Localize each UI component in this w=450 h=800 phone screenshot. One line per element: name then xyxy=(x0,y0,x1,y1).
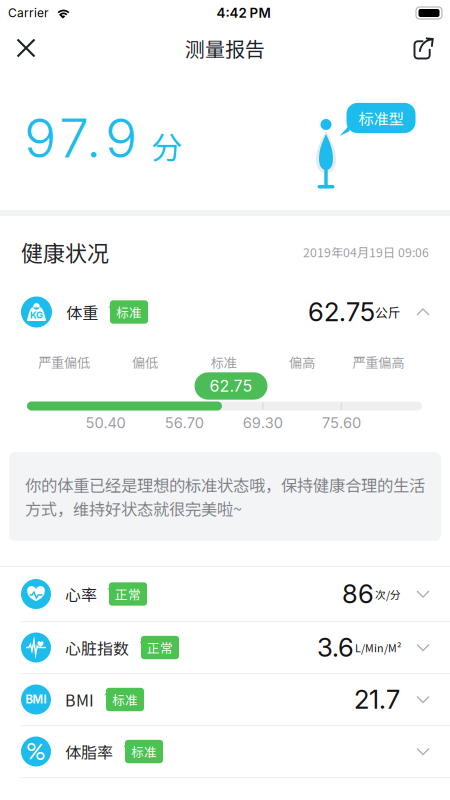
staticText: 体重 xyxy=(66,300,98,324)
staticText: 偏高 xyxy=(289,352,315,372)
staticText: BMI xyxy=(25,693,46,706)
staticText: 测量报告 xyxy=(185,33,265,62)
staticText: 严重偏高 xyxy=(352,352,404,372)
staticText: 62.75 xyxy=(308,296,375,327)
staticText: 62.75 xyxy=(209,376,252,396)
staticText: 心率 xyxy=(65,582,97,606)
staticText: 69.30 xyxy=(243,414,283,432)
staticText: 正常 xyxy=(115,585,141,603)
staticText: 4:42 PM xyxy=(216,5,270,21)
staticText: 次/分 xyxy=(375,586,401,602)
staticText: 标准 xyxy=(210,352,236,372)
staticText: L/Min/M² xyxy=(355,640,401,655)
button[interactable]: Share xyxy=(398,26,450,70)
staticText: 偏低 xyxy=(132,352,158,372)
staticText: 标准 xyxy=(116,303,142,321)
staticText: BMI xyxy=(65,688,94,711)
staticText: 86 xyxy=(342,578,374,609)
staticText: 97.9 xyxy=(24,106,137,170)
staticText: 正常 xyxy=(147,638,173,657)
staticText: 分 xyxy=(151,123,182,168)
staticText: 2019年04月19日 09:06 xyxy=(303,243,429,261)
staticText: 你的体重已经是理想的标准状态哦，保持健康合理的生活方式，维持好状态就很完美啦~ xyxy=(25,473,425,520)
button[interactable]: 心率 xyxy=(0,567,450,621)
staticText: 50.40 xyxy=(86,414,126,432)
staticText: 体脂率 xyxy=(65,740,113,763)
staticText: 严重偏低 xyxy=(38,352,90,372)
staticText: 心脏指数 xyxy=(65,636,129,659)
staticText: 标准 xyxy=(112,690,138,709)
button[interactable]: 心脏指数 xyxy=(0,622,450,673)
button[interactable]: Close xyxy=(0,26,52,70)
staticText: 56.70 xyxy=(165,414,204,432)
staticText: 75.60 xyxy=(322,414,361,432)
button[interactable]: BMI xyxy=(0,674,450,725)
staticText: 21.7 xyxy=(354,684,400,715)
button[interactable]: KG xyxy=(0,288,450,336)
staticText: Carrier xyxy=(8,6,49,20)
staticText: 标准型 xyxy=(358,107,403,129)
button[interactable]: 体脂率 xyxy=(0,726,450,777)
staticText: KG xyxy=(30,309,43,321)
staticText: 健康状况 xyxy=(21,236,109,268)
staticText: 公斤 xyxy=(375,303,401,321)
staticText: 3.6 xyxy=(317,632,354,663)
staticText: 标准 xyxy=(131,742,157,761)
